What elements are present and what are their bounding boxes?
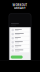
button[interactable] xyxy=(11,49,29,52)
button[interactable] xyxy=(11,55,23,59)
button[interactable] xyxy=(11,36,29,40)
staticText: WORKOUT xyxy=(12,3,27,7)
button[interactable] xyxy=(11,28,29,32)
button[interactable] xyxy=(11,40,29,44)
button[interactable] xyxy=(11,45,29,48)
staticText: LIBRARY xyxy=(14,6,26,10)
button[interactable] xyxy=(11,32,29,36)
